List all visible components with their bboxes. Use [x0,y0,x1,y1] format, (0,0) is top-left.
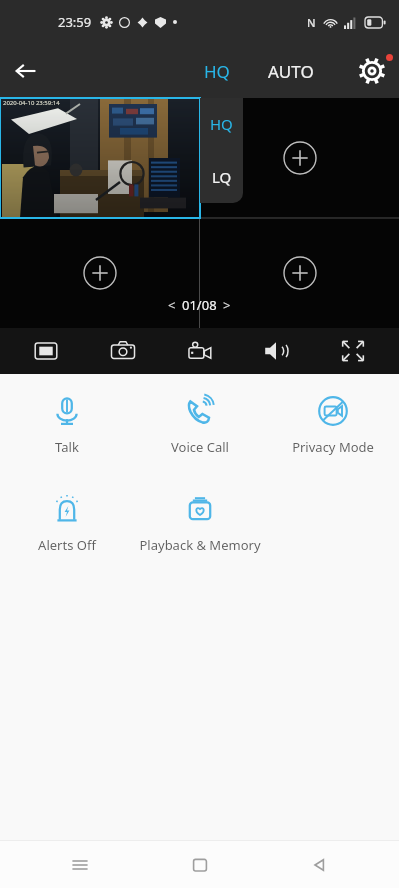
button[interactable]: Add camera 4 [200,218,399,328]
button[interactable]: Privacy Mode [266,390,399,462]
button[interactable]: Back [0,45,52,97]
staticText: 01/08 [182,296,217,314]
button[interactable]: Picture in picture [15,328,77,374]
staticText: Privacy Mode [292,438,374,456]
button[interactable]: Camera 1 live view [0,98,200,218]
button[interactable]: Previous page [162,290,182,320]
button[interactable]: Recents [40,841,120,888]
button[interactable]: Add camera 3 [0,218,199,328]
button[interactable]: Talk [0,390,133,462]
staticText: N [307,15,316,30]
button[interactable]: LQ [200,150,243,203]
staticText: 23:59 [58,13,92,31]
button[interactable]: HQ [200,98,243,150]
staticText: HQ [204,60,230,83]
button[interactable]: HQ [194,52,240,91]
staticText: Voice Call [171,438,229,456]
button[interactable]: Back [279,841,359,888]
staticText: LQ [212,167,232,187]
button[interactable]: Record video [169,328,231,374]
button[interactable]: Alerts Off [0,488,133,560]
button[interactable]: Settings [345,44,399,98]
staticText: < [168,296,176,314]
button[interactable]: Next page [217,290,237,320]
button[interactable]: AUTO [258,52,324,91]
staticText: HQ [210,114,233,134]
button[interactable]: Snapshot [92,328,154,374]
staticText: 2020-04-10 23:59:14 [3,99,60,107]
button[interactable]: Playback & Memory [133,488,266,560]
staticText: Playback & Memory [139,536,261,554]
button[interactable]: Home [160,841,240,888]
button[interactable]: Sound [245,328,307,374]
staticText: AUTO [268,60,314,83]
staticText: Talk [55,438,79,456]
button[interactable]: Fullscreen [322,328,384,374]
staticText: > [223,296,231,314]
staticText: Alerts Off [38,536,96,554]
button[interactable]: Add camera 2 [200,98,399,218]
button[interactable]: Voice Call [133,390,266,462]
